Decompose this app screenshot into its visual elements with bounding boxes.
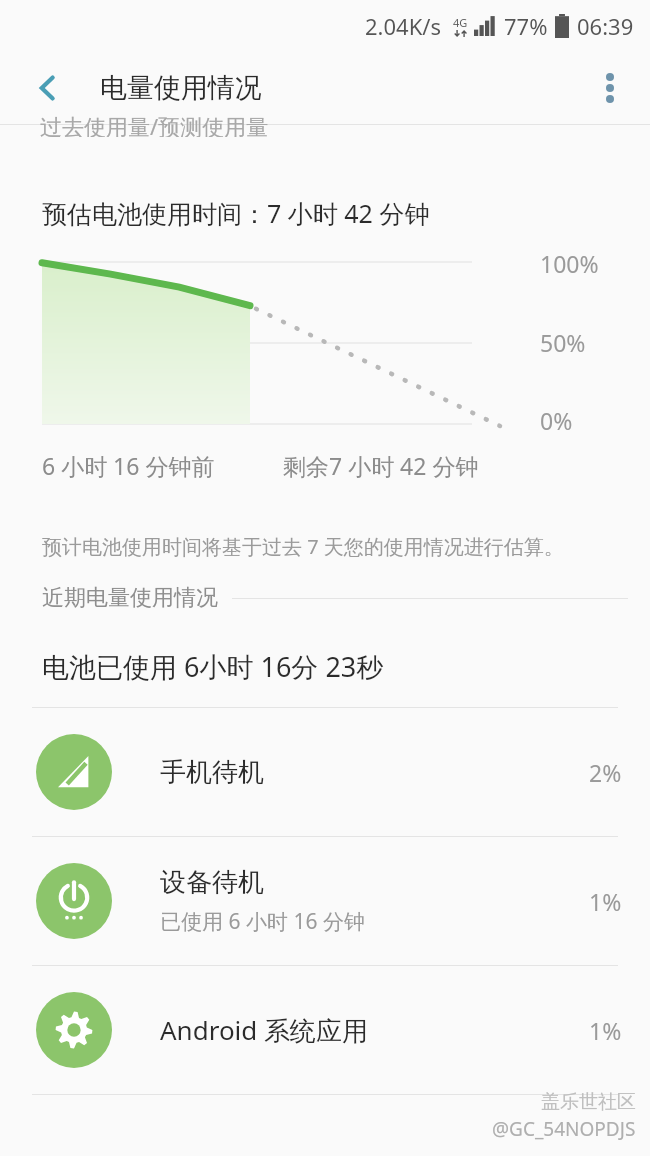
button[interactable]: More options — [584, 62, 636, 114]
button[interactable]: 设备待机 — [0, 837, 650, 965]
staticText: 100% — [540, 248, 599, 279]
button[interactable]: 手机待机 — [0, 708, 650, 836]
staticText: 设备待机 — [160, 866, 264, 899]
staticText: 1% — [589, 886, 622, 917]
button[interactable]: Android 系统应用 — [0, 966, 650, 1094]
staticText: 剩余7 小时 42 分钟 — [283, 450, 479, 481]
staticText: 1% — [589, 1015, 622, 1046]
button[interactable]: 过去使用量/预测使用量 — [40, 111, 269, 137]
staticText: 近期电量使用情况 — [42, 584, 218, 612]
staticText: 电池已使用 6小时 16分 23秒 — [42, 648, 384, 685]
staticText: 0% — [540, 405, 573, 436]
button[interactable]: Back — [22, 62, 74, 114]
staticText: 50% — [540, 327, 586, 358]
staticText: 预计电池使用时间将基于过去 7 天您的使用情况进行估算。 — [42, 533, 564, 560]
staticText: 手机待机 — [160, 756, 264, 789]
staticText: 2.04K/s — [365, 11, 441, 41]
staticText: 过去使用量/预测使用量 — [40, 111, 269, 137]
staticText: 4G — [453, 15, 468, 30]
staticText: 盖乐世社区 — [541, 1090, 636, 1114]
staticText: Android 系统应用 — [160, 1012, 369, 1048]
staticText: @GC_54NOPDJS — [492, 1116, 636, 1142]
staticText: 已使用 6 小时 16 分钟 — [160, 907, 365, 936]
staticText: 77% — [504, 11, 548, 41]
staticText: 06:39 — [577, 11, 634, 41]
staticText: 电量使用情况 — [100, 71, 262, 105]
staticText: 预估电池使用时间：7 小时 42 分钟 — [42, 196, 430, 230]
staticText: 2% — [589, 757, 622, 788]
staticText: 6 小时 16 分钟前 — [42, 450, 215, 481]
